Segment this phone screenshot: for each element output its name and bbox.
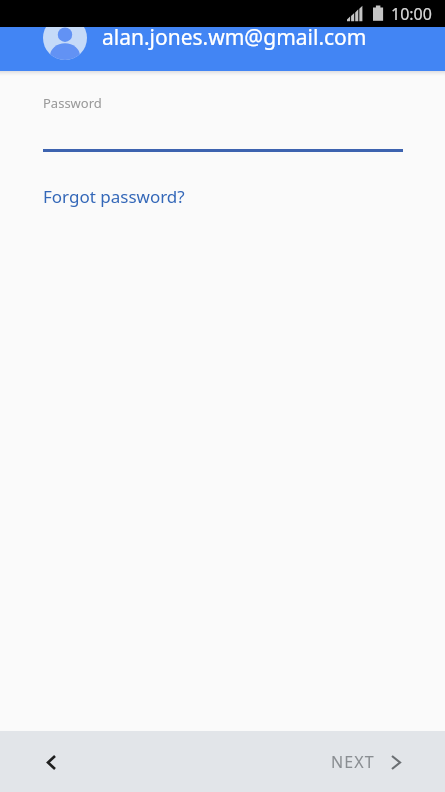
staticText: 10:00 — [391, 3, 432, 25]
staticText: Password — [43, 94, 102, 112]
staticText: NEXT — [331, 751, 375, 773]
staticText: Forgot password? — [43, 185, 185, 208]
button[interactable]: alan.jones.wm@gmail.com — [0, 27, 445, 71]
button[interactable]: NEXT — [315, 739, 414, 785]
staticText: alan.jones.wm@gmail.com — [102, 23, 367, 52]
button[interactable]: Password — [0, 84, 445, 154]
button[interactable]: Forgot password? — [33, 177, 195, 216]
button[interactable]: Back — [31, 742, 71, 782]
